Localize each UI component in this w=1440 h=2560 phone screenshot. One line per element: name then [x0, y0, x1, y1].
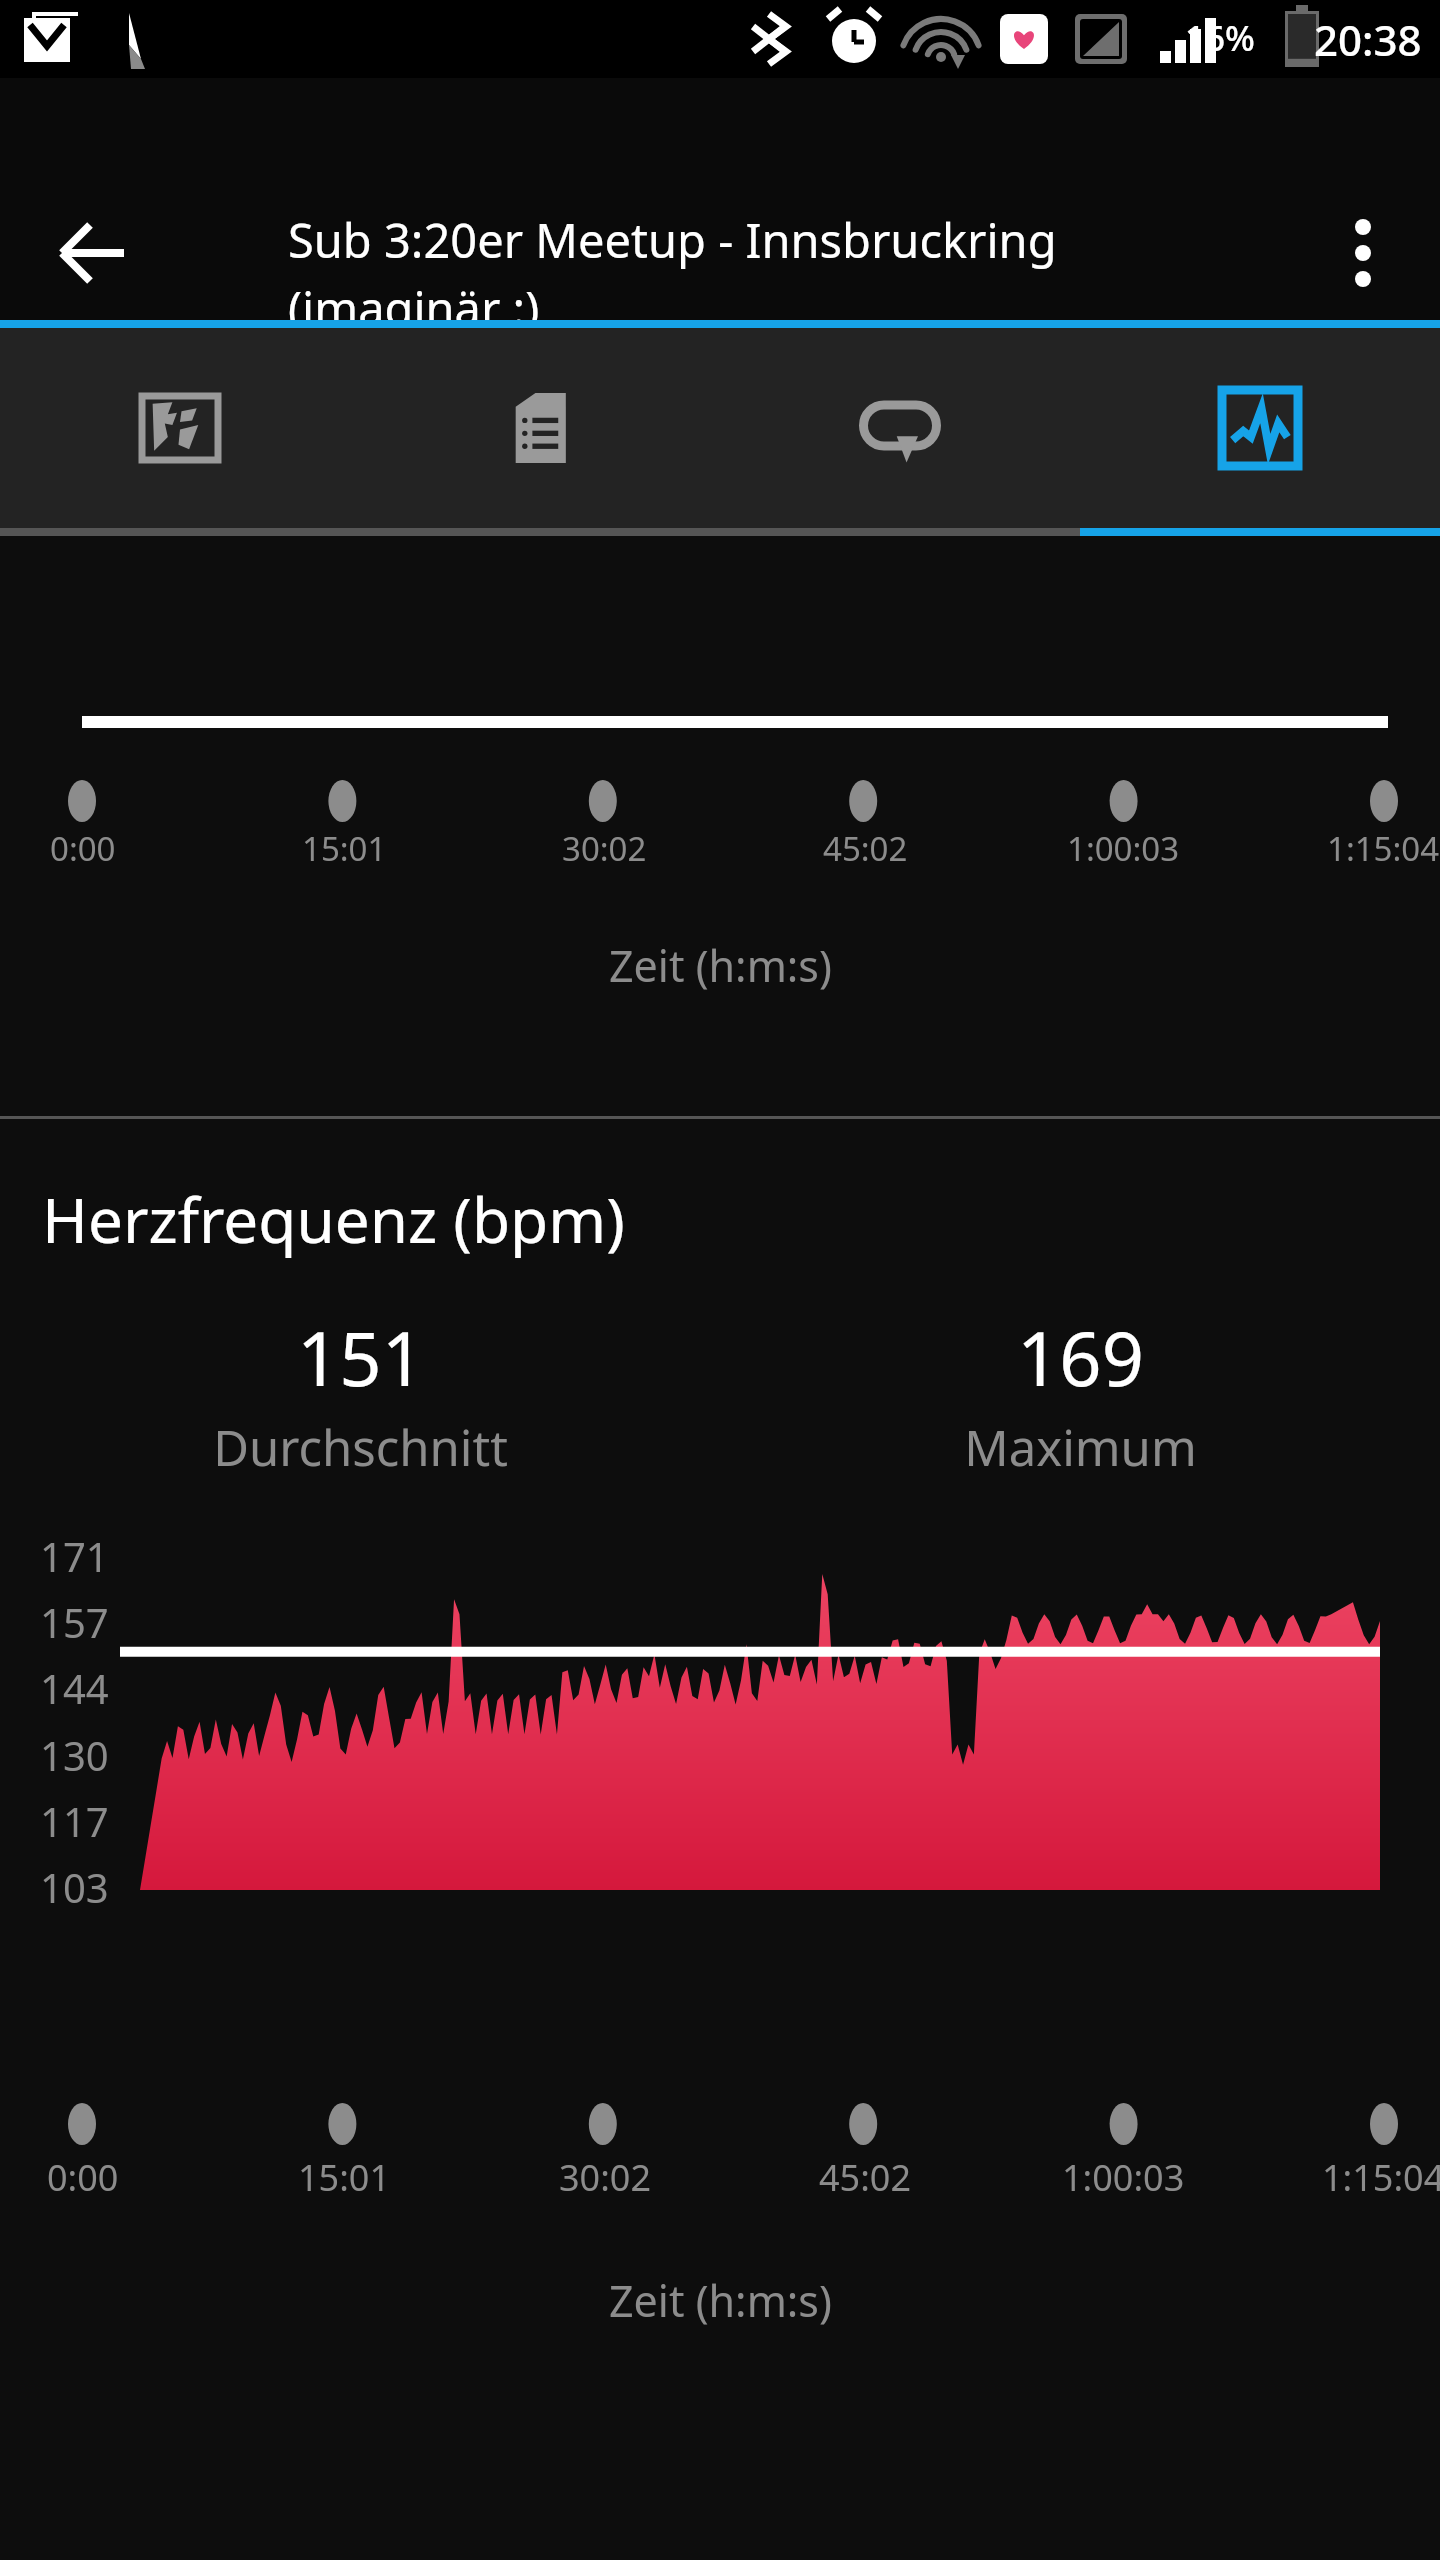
button[interactable]: Map — [0, 328, 360, 528]
staticText: Zeit (h:m:s) — [609, 2271, 832, 2330]
button[interactable]: Laps — [720, 328, 1080, 528]
staticText: Sub 3:20er Meetup - Innsbruckring — [288, 208, 1057, 272]
staticText: 15:01 — [302, 826, 387, 871]
staticText: 157 — [40, 1595, 109, 1649]
staticText: 144 — [40, 1661, 109, 1715]
staticText: 20:38 — [1314, 11, 1422, 68]
staticText: 45:02 — [819, 2153, 912, 2202]
staticText: 0:00 — [47, 2153, 119, 2202]
button[interactable]: Back — [38, 198, 148, 308]
button[interactable]: More options — [1308, 198, 1418, 308]
staticText: 16% — [1185, 14, 1255, 62]
staticText: 130 — [40, 1728, 109, 1782]
staticText: 30:02 — [559, 2153, 652, 2202]
button[interactable]: Details — [360, 328, 720, 528]
staticText: Herzfrequenz (bpm) — [42, 1177, 625, 1261]
staticText: (imaginär :) — [288, 276, 540, 340]
staticText: 0:00 — [50, 826, 116, 871]
staticText: 15:01 — [298, 2153, 391, 2202]
staticText: 151 — [297, 1307, 424, 1408]
staticText: 30:02 — [562, 826, 647, 871]
staticText: 1:15:04 — [1327, 826, 1440, 871]
staticText: 171 — [40, 1529, 109, 1583]
staticText: 117 — [40, 1794, 109, 1848]
staticText: 1:00:03 — [1062, 2153, 1185, 2202]
staticText: Durchschnitt — [213, 1414, 508, 1481]
staticText: 103 — [40, 1860, 109, 1914]
button[interactable]: Charts — [1080, 328, 1440, 528]
staticText: 45:02 — [823, 826, 908, 871]
staticText: 169 — [1017, 1307, 1144, 1408]
staticText: Zeit (h:m:s) — [609, 936, 832, 995]
staticText: 1:00:03 — [1067, 826, 1180, 871]
staticText: 1:15:04 — [1322, 2153, 1440, 2202]
staticText: Maximum — [964, 1414, 1197, 1481]
